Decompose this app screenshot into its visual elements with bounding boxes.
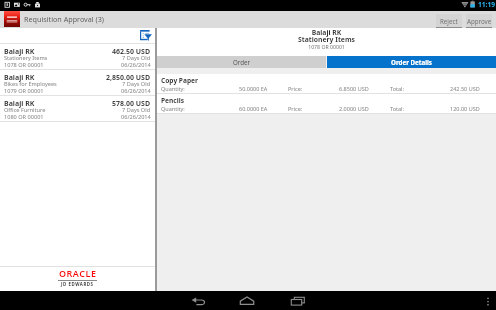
staticText: 50.0000 EA [239,85,268,92]
staticText: 60.0000 EA [239,105,268,112]
button[interactable]: Back [182,291,215,310]
button[interactable]: Order Details [327,56,496,68]
staticText: Order [233,58,251,66]
button[interactable]: Approve [466,14,492,28]
staticText: 06/26/2014 [121,87,151,95]
button[interactable]: Balaji RK [0,44,155,69]
staticText: Stationery Items [4,54,122,62]
staticText: Price: [288,105,303,112]
staticText: 462.50 USD [112,47,151,57]
staticText: ORACLE [59,267,97,279]
staticText: 11:19 [478,0,495,9]
button[interactable]: Copy Paper [157,74,496,93]
button[interactable]: Order [157,56,326,68]
staticText: Total: [390,85,404,92]
staticText: 06/26/2014 [121,113,151,121]
button[interactable]: More options [484,295,492,307]
button[interactable]: Oracle home [4,11,20,27]
staticText: Balaji RK [4,47,112,57]
staticText: Total: [390,105,404,112]
staticText: Balaji RK [4,73,106,83]
staticText: Approve [467,17,492,25]
staticText: Reject [440,17,458,25]
staticText: Copy Paper [161,76,198,85]
staticText: 2,850.00 USD [106,73,151,83]
staticText: Order Details [391,58,432,66]
staticText: 120.00 USD [450,105,480,112]
staticText: JD EDWARDS [61,281,94,287]
staticText: 1078 OR 00001 [157,43,496,50]
staticText: 1079 OR 00001 [4,87,121,95]
staticText: 1078 OR 00001 [4,61,121,69]
staticText: Price: [288,85,303,92]
button[interactable]: Recent apps [282,291,315,310]
button[interactable]: Home [232,291,265,310]
staticText: 1080 OR 00001 [4,113,121,121]
staticText: 7 Days Old [122,80,151,88]
staticText: Balaji RK [157,28,496,37]
button[interactable]: Reject [436,14,462,28]
staticText: Balaji RK [4,99,112,109]
button[interactable]: Balaji RK [0,70,155,95]
button[interactable]: Balaji RK [0,96,155,121]
staticText: 7 Days Old [122,106,151,114]
staticText: Requisition Approval (3) [24,14,104,24]
staticText: 242.50 USD [450,85,480,92]
staticText: Pencils [161,96,184,105]
staticText: Stationery Items [157,35,496,44]
button[interactable]: Pencils [157,94,496,113]
staticText: 7 Days Old [122,54,151,62]
staticText: Office Furniture [4,106,122,114]
staticText: 578.00 USD [112,99,151,109]
staticText: 2.0000 USD [339,105,369,112]
staticText: 6.8500 USD [339,85,369,92]
staticText: Quantity: [161,85,185,92]
staticText: Bikes for Employees [4,80,122,88]
staticText: Quantity: [161,105,185,112]
button[interactable]: Filter [140,30,152,41]
staticText: 06/26/2014 [121,61,151,69]
